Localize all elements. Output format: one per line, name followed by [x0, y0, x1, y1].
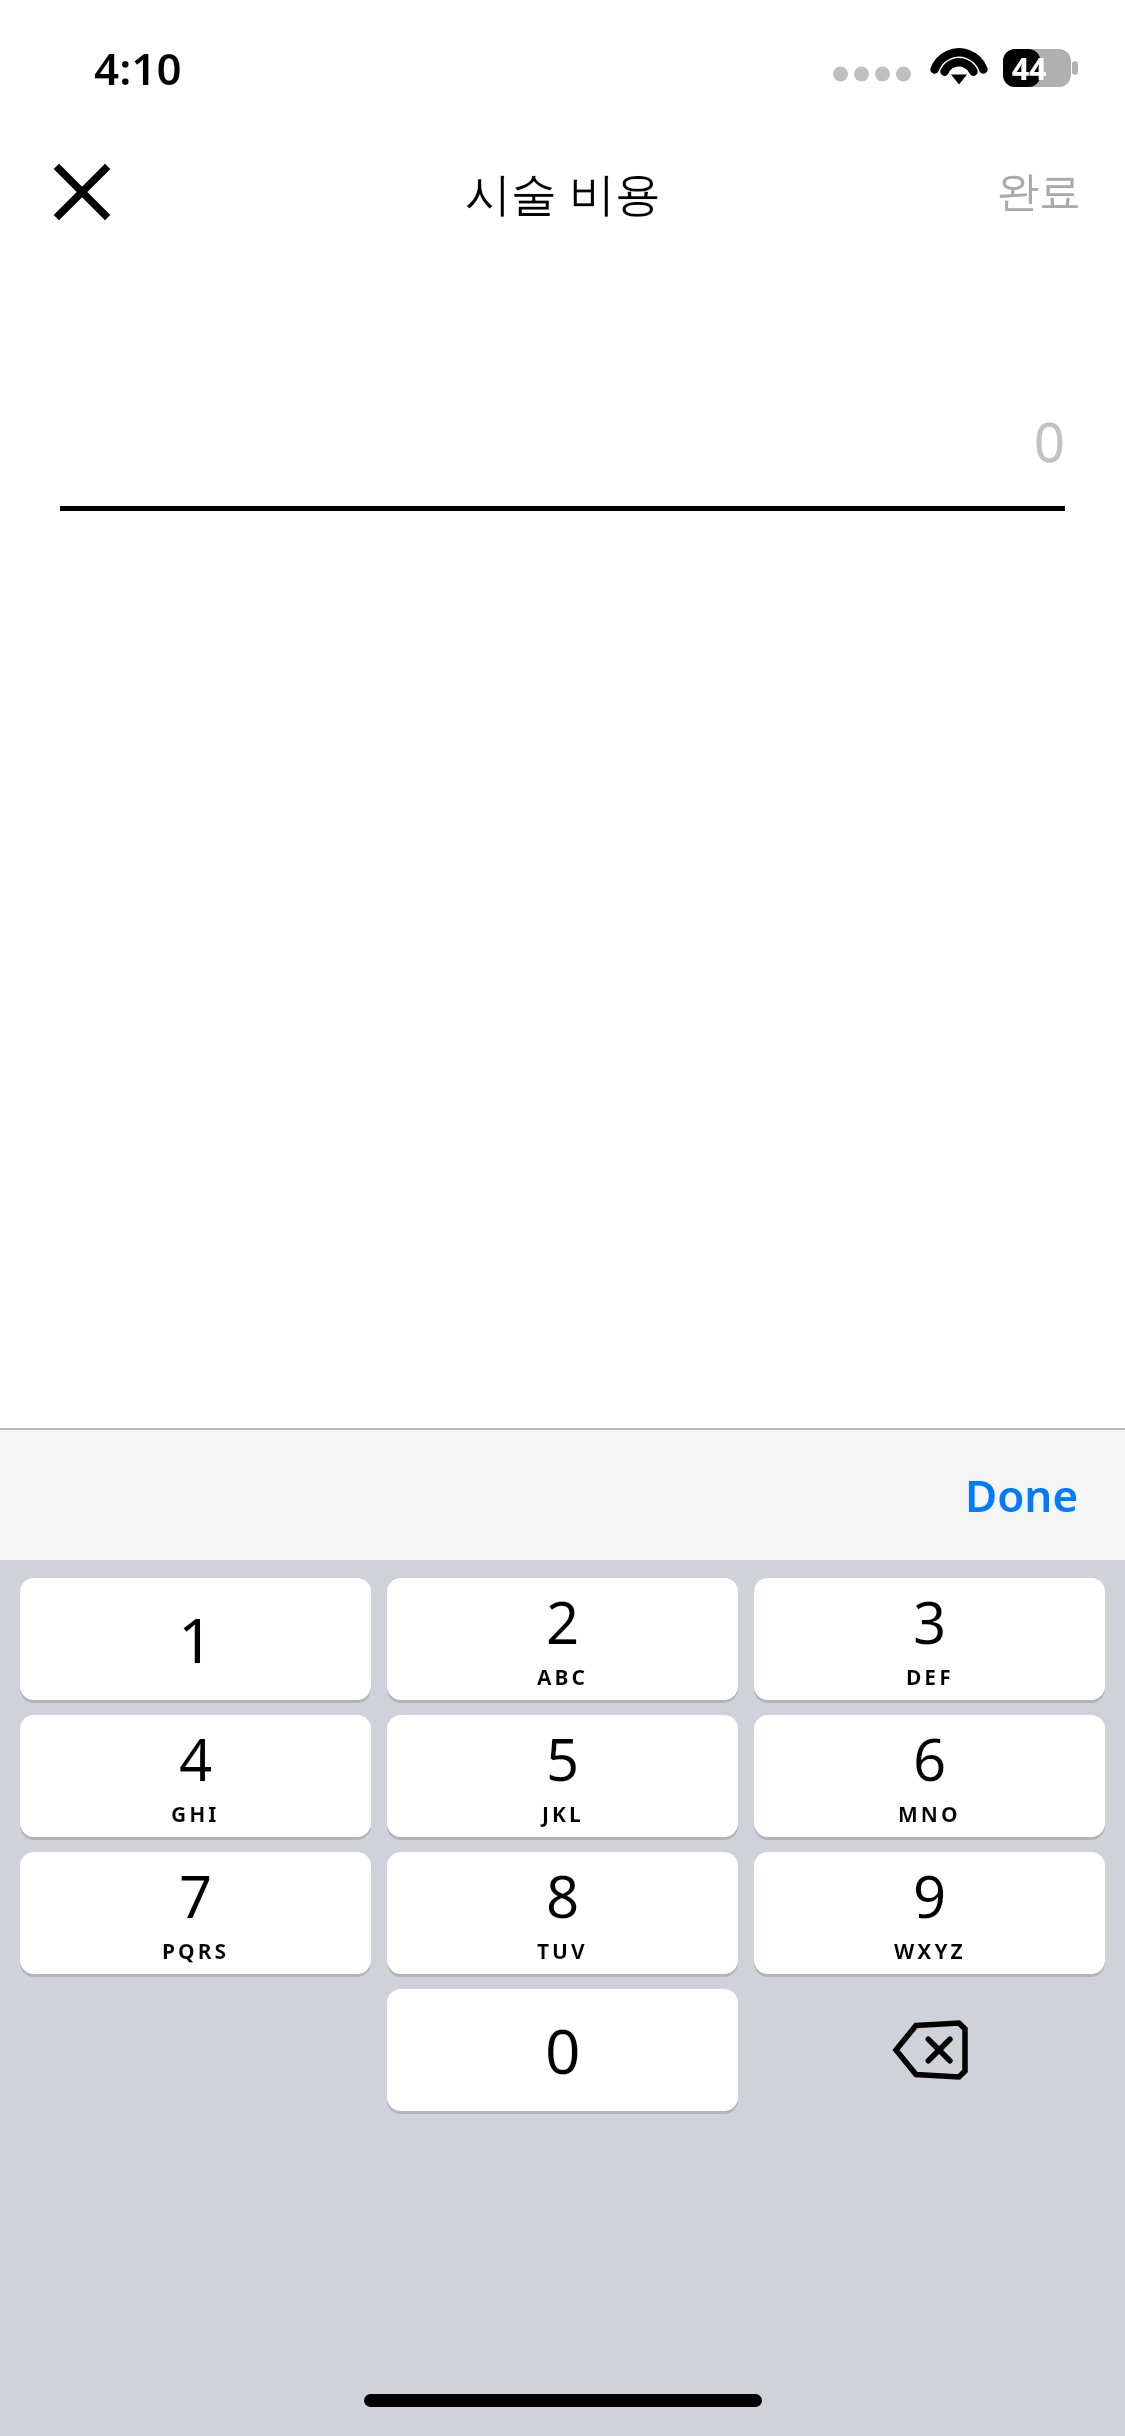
staticText: JKL	[542, 1800, 584, 1829]
staticText: TUV	[537, 1937, 588, 1966]
button[interactable]: 완료	[953, 146, 1125, 239]
staticText: PQRS	[162, 1937, 229, 1966]
button[interactable]: 4	[20, 1715, 371, 1837]
staticText: MNO	[898, 1800, 961, 1829]
staticText: 9	[913, 1856, 947, 1935]
button[interactable]: Close	[36, 146, 128, 238]
staticText: 0	[545, 2008, 581, 2092]
staticText: 완료	[997, 166, 1081, 219]
staticText: 2	[546, 1582, 580, 1661]
button[interactable]: 2	[387, 1578, 738, 1700]
staticText: 7	[179, 1856, 213, 1935]
button[interactable]: 9	[754, 1852, 1105, 1974]
button[interactable]: 0	[60, 402, 1065, 480]
staticText: 8	[546, 1856, 580, 1935]
staticText: 1	[178, 1597, 214, 1681]
staticText: 4	[179, 1719, 213, 1798]
staticText: 3	[913, 1582, 947, 1661]
button[interactable]: Done	[919, 1439, 1125, 1551]
button[interactable]: 0	[387, 1989, 738, 2111]
staticText: 6	[913, 1719, 947, 1798]
staticText: 4:10	[94, 38, 182, 98]
button[interactable]: 3	[754, 1578, 1105, 1700]
staticText: DEF	[906, 1663, 954, 1692]
staticText: 0	[1034, 404, 1065, 478]
button[interactable]: 8	[387, 1852, 738, 1974]
button[interactable]: 6	[754, 1715, 1105, 1837]
staticText: 5	[546, 1719, 580, 1798]
staticText: 44	[1012, 48, 1047, 86]
staticText: GHI	[171, 1800, 220, 1829]
staticText: WXYZ	[894, 1937, 966, 1966]
staticText: 시술 비용	[465, 161, 661, 224]
staticText: ABC	[537, 1663, 588, 1692]
button[interactable]: 1	[20, 1578, 371, 1700]
button[interactable]: Backspace	[754, 1989, 1105, 2111]
button[interactable]: 7	[20, 1852, 371, 1974]
button[interactable]: 5	[387, 1715, 738, 1837]
staticText: Done	[965, 1465, 1079, 1525]
